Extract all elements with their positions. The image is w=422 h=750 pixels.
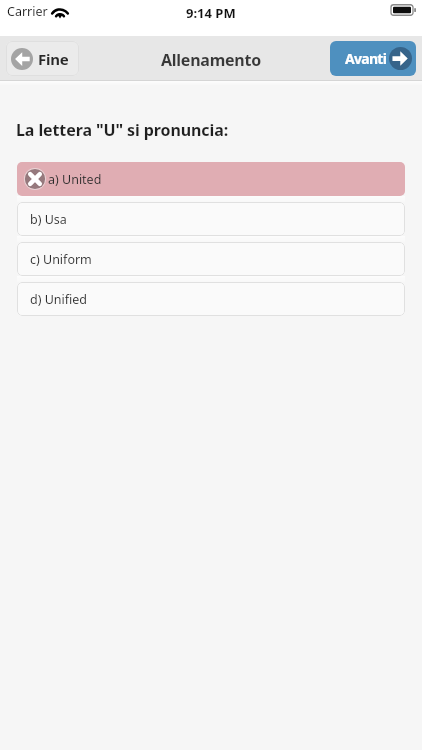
button[interactable]: b) Usa: [17, 202, 405, 236]
staticText: Avanti: [345, 49, 387, 68]
staticText: Carrier: [7, 3, 48, 20]
staticText: Fine: [38, 49, 69, 69]
staticText: a) United: [48, 171, 102, 188]
button[interactable]: Fine: [6, 41, 79, 76]
staticText: d) Unified: [30, 291, 88, 308]
staticText: 9:14 PM: [186, 4, 236, 22]
other: Wrong answer: [24, 168, 46, 190]
button[interactable]: c) Uniform: [17, 242, 405, 276]
staticText: b) Usa: [30, 211, 67, 228]
button[interactable]: Avanti: [330, 41, 416, 76]
other: Next: [389, 47, 412, 70]
staticText: c) Uniform: [30, 251, 92, 268]
staticText: La lettera "U" si pronuncia:: [16, 119, 229, 141]
button[interactable]: Wrong answer: [17, 162, 405, 196]
button[interactable]: d) Unified: [17, 282, 405, 316]
staticText: Allenamento: [161, 49, 261, 71]
